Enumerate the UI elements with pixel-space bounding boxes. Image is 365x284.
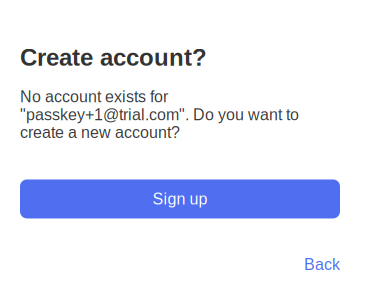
button[interactable]: Sign up [20, 179, 340, 218]
staticText: Sign up [152, 190, 207, 208]
button[interactable]: Back [304, 255, 340, 273]
staticText: Create account? [20, 44, 207, 71]
staticText: Back [304, 255, 340, 273]
staticText: No account exists for "passkey+1@trial.c… [20, 88, 299, 141]
